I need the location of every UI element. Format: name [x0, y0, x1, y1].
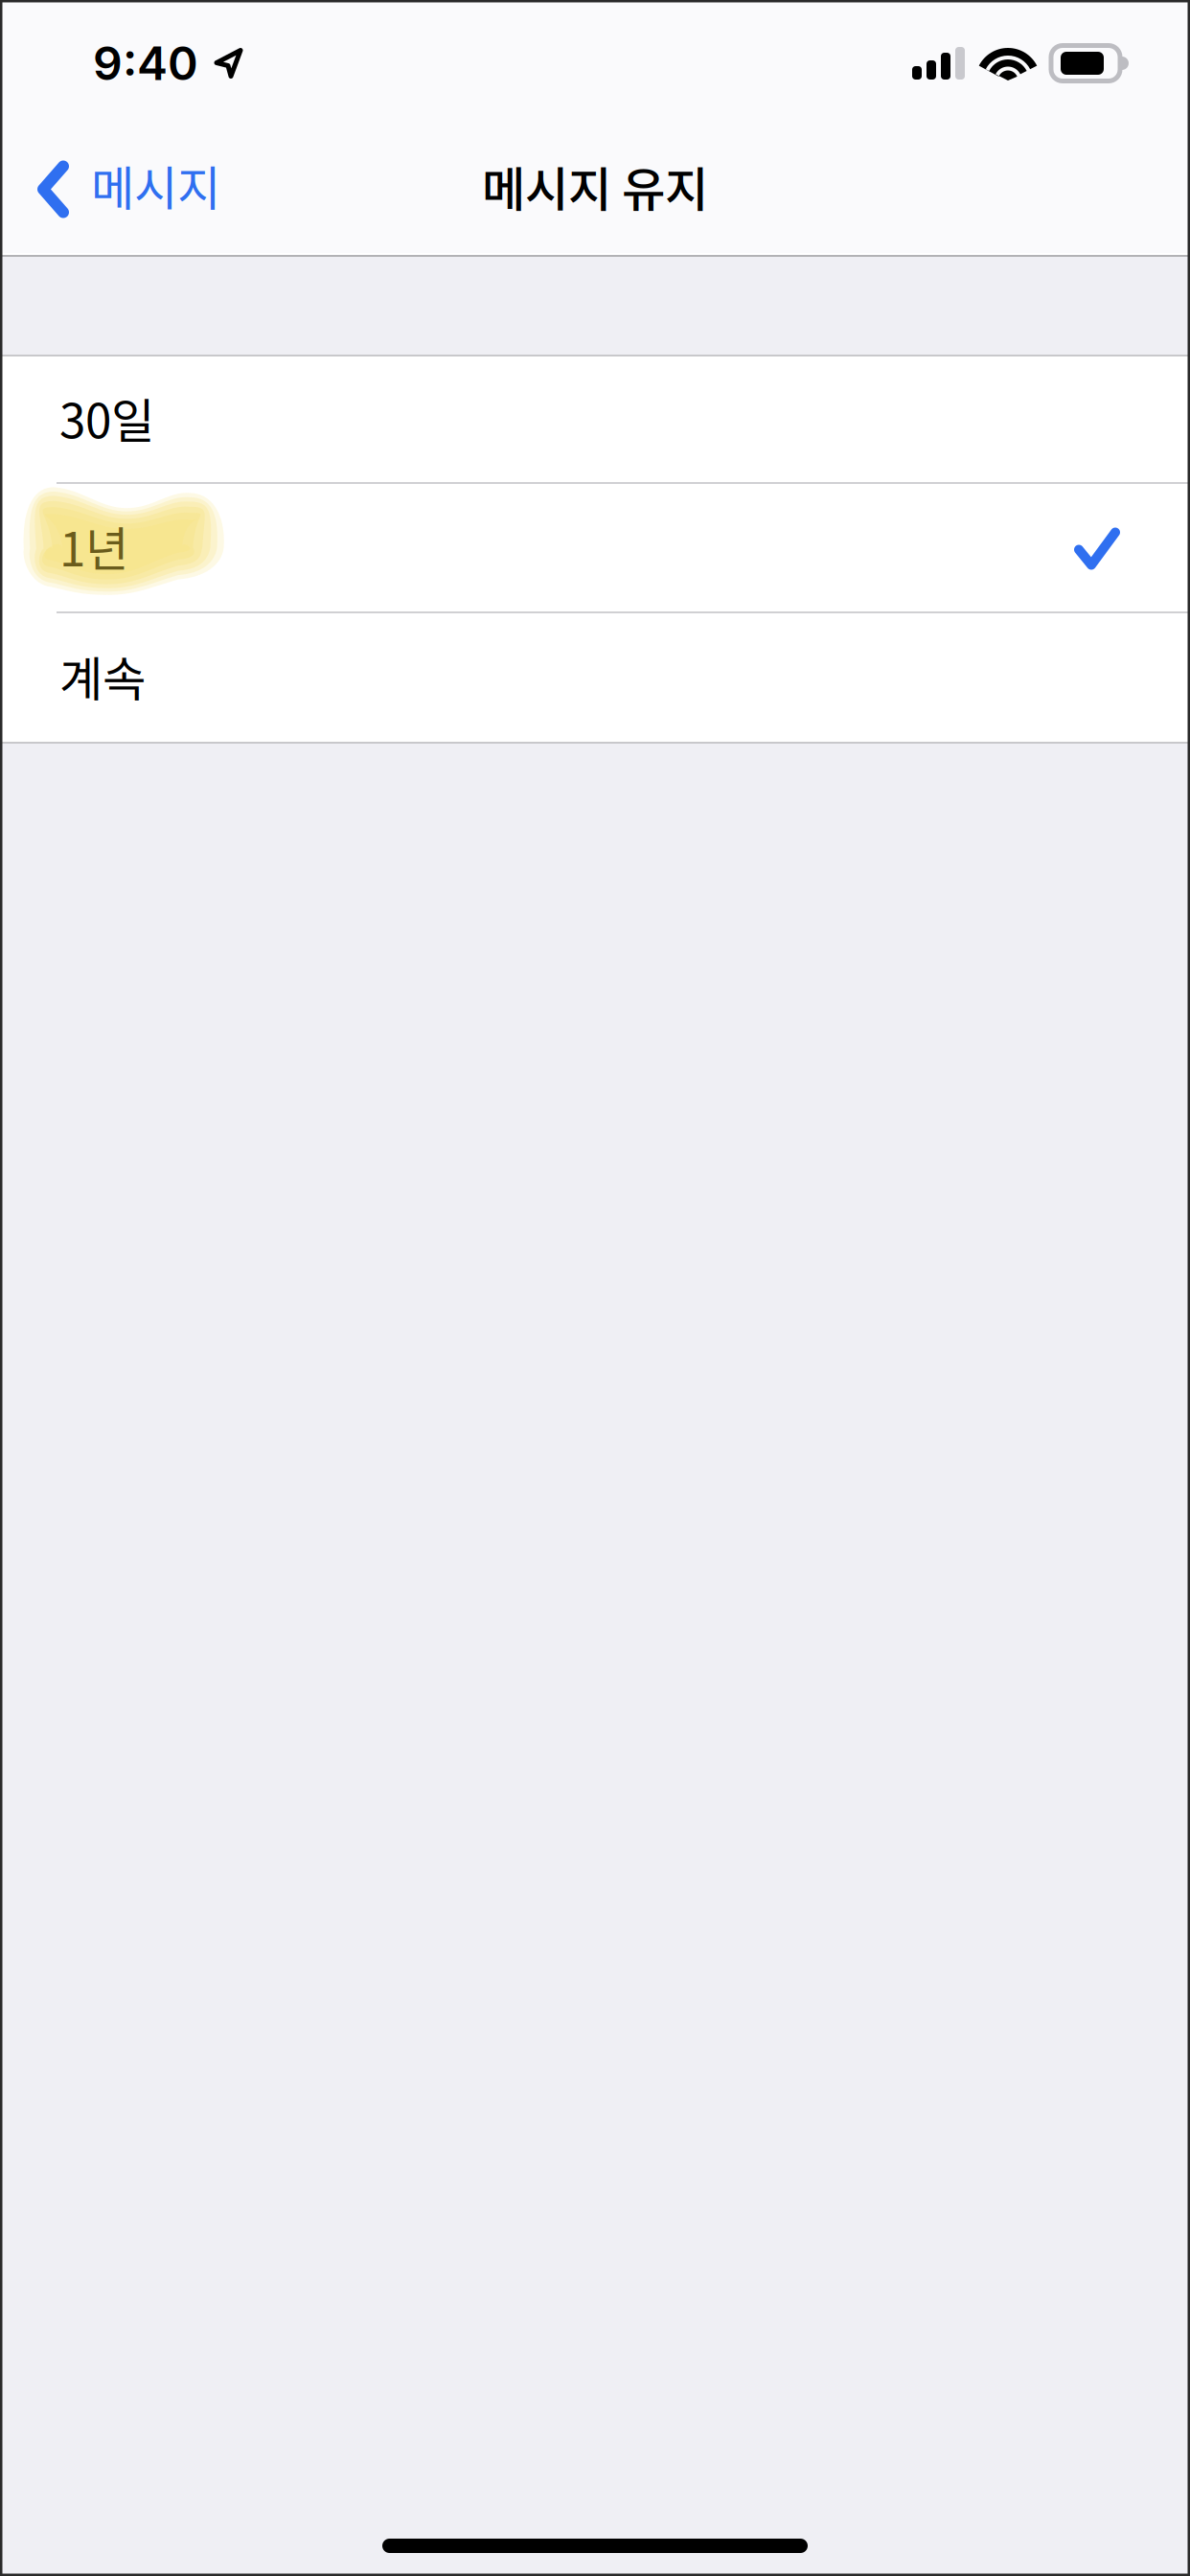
staticText: 1년 — [59, 512, 128, 580]
staticText: 메시지 유지 — [482, 152, 708, 220]
button[interactable]: 1년 — [0, 484, 1190, 611]
staticText: 9:40 — [93, 35, 198, 91]
staticText: 30일 — [59, 383, 154, 452]
staticText: 계속 — [59, 641, 146, 710]
button[interactable]: 계속 — [0, 613, 1190, 742]
button[interactable]: 메시지 — [0, 138, 240, 241]
button[interactable]: 30일 — [0, 356, 1190, 482]
staticText: 메시지 — [91, 151, 220, 219]
